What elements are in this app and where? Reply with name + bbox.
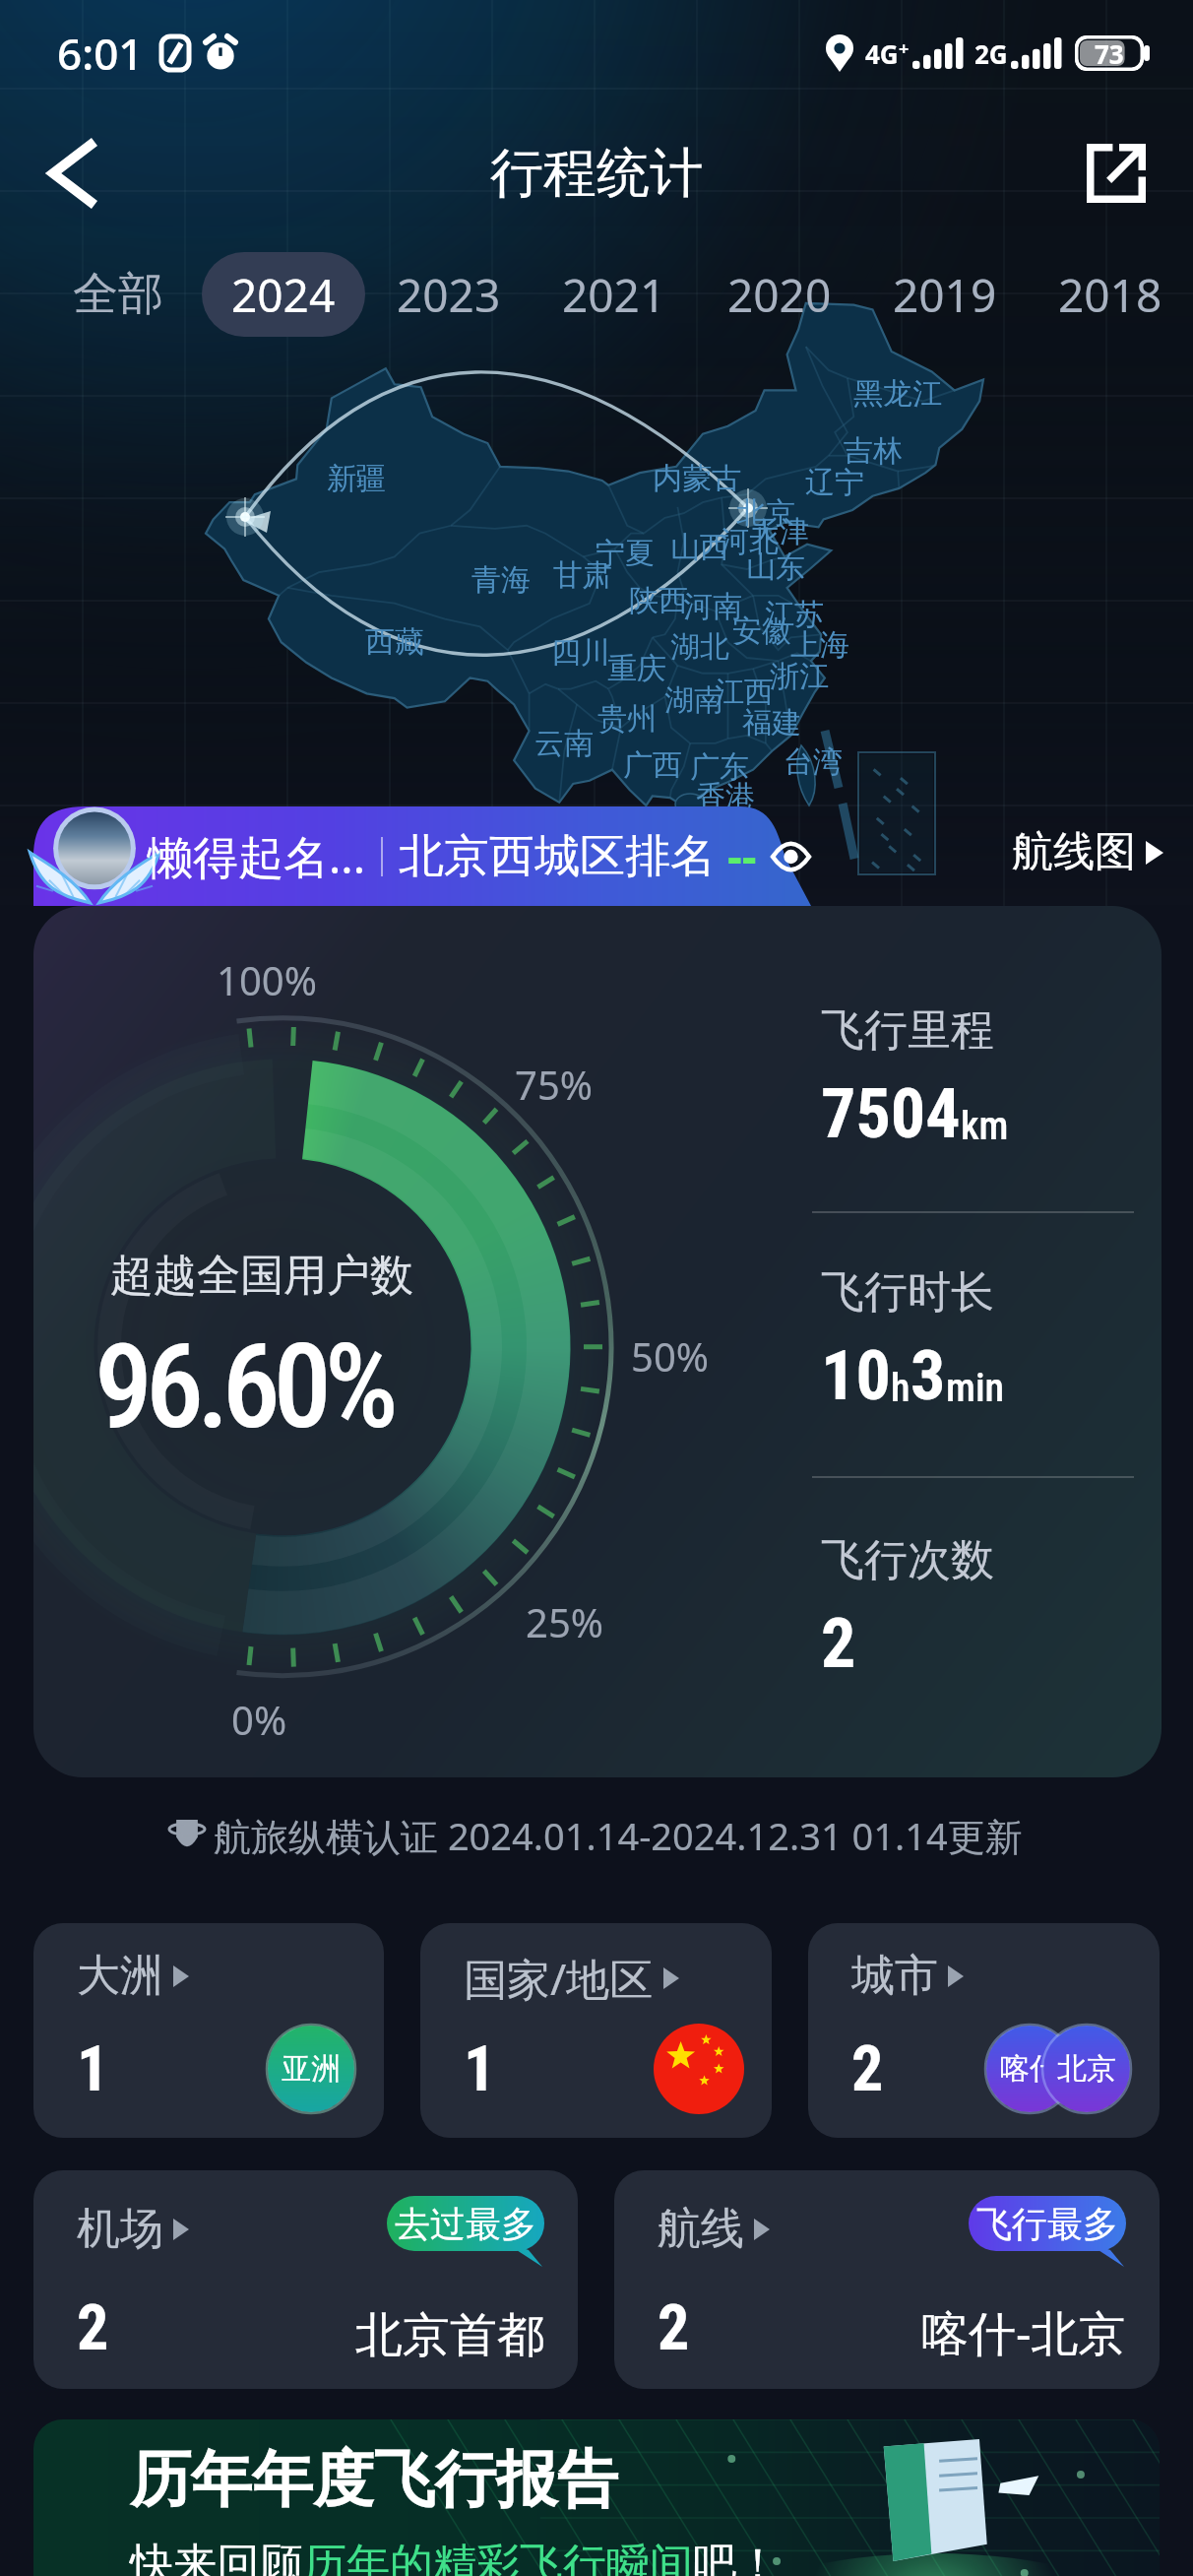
button[interactable]: 全部 xyxy=(36,252,200,337)
staticText: 内蒙古 xyxy=(653,460,741,497)
staticText: 2 xyxy=(821,1603,856,1684)
staticText: 安徽 xyxy=(732,612,791,650)
staticText: 山西 xyxy=(670,529,729,566)
staticText: 机场 xyxy=(77,2202,163,2256)
staticText: 航线 xyxy=(658,2202,744,2256)
button[interactable]: 航线图 xyxy=(1008,820,1167,884)
button[interactable]: 2020 xyxy=(698,252,861,337)
staticText: 山东 xyxy=(746,548,805,586)
staticText: 2023 xyxy=(397,264,501,326)
staticText: 北京 xyxy=(736,494,795,532)
button[interactable]: 2021 xyxy=(533,252,696,337)
staticText: 2021 xyxy=(562,264,666,326)
button[interactable]: 国家/地区 xyxy=(420,1923,772,2138)
staticText: 青海 xyxy=(471,561,531,599)
staticText: -- xyxy=(727,825,757,887)
staticText: 全部 xyxy=(73,266,163,323)
staticText: 云南 xyxy=(534,725,594,762)
staticText: 湖南 xyxy=(664,681,723,719)
button[interactable]: 2023 xyxy=(367,252,531,337)
staticText: 行程统计 xyxy=(490,140,703,207)
staticText: 大洲 xyxy=(77,1949,163,2003)
staticText: 四川 xyxy=(551,634,610,672)
staticText: 吉林 xyxy=(844,432,903,470)
staticText: 吧！ xyxy=(693,2538,780,2576)
staticText: 3 xyxy=(910,1335,946,1416)
staticText: 航线图 xyxy=(1012,826,1136,878)
staticText: 北京西城区排名 xyxy=(399,828,716,885)
staticText: 广东 xyxy=(690,748,749,786)
staticText: 超越全国用户数 xyxy=(110,1249,413,1303)
staticText: 50% xyxy=(631,1329,709,1383)
staticText: 去过最多 xyxy=(395,2202,536,2246)
staticText: 历年的精彩飞行瞬间 xyxy=(303,2538,693,2576)
staticText: 甘肃 xyxy=(553,556,612,594)
button[interactable]: Back xyxy=(22,124,120,223)
staticText: 7504 xyxy=(821,1073,961,1154)
button[interactable]: 大洲 xyxy=(33,1923,384,2138)
staticText: 96.60% xyxy=(94,1320,392,1455)
staticText: 宁夏 xyxy=(596,535,655,572)
staticText: 快来回顾 xyxy=(130,2538,303,2576)
staticText: 73 xyxy=(1095,36,1124,71)
staticText: 2 xyxy=(658,2291,690,2365)
staticText: 河北 xyxy=(720,523,779,560)
staticText: 0% xyxy=(231,1693,287,1746)
staticText: 天津 xyxy=(750,513,809,550)
button[interactable]: 2024 xyxy=(202,252,365,337)
staticText: 2020 xyxy=(727,264,832,326)
staticText: 飞行次数 xyxy=(821,1533,994,1587)
staticText: 北京 xyxy=(1057,2050,1116,2088)
staticText: 25% xyxy=(526,1595,603,1648)
staticText: 喀什 xyxy=(1000,2050,1059,2088)
staticText: 辽宁 xyxy=(805,464,864,501)
staticText: 重庆 xyxy=(607,650,666,687)
staticText: 2G xyxy=(974,36,1008,71)
staticText: 飞行时长 xyxy=(821,1265,994,1320)
staticText: 航旅纵横认证 2024.01.14-2024.12.31 01.14更新 xyxy=(214,1810,1023,1861)
staticText: 西藏 xyxy=(365,623,424,661)
staticText: + xyxy=(899,36,910,61)
staticText: 江西 xyxy=(715,674,774,711)
staticText: 城市 xyxy=(851,1949,938,2003)
staticText: 陕西 xyxy=(629,582,688,619)
button[interactable]: 机场 xyxy=(33,2170,578,2389)
button[interactable]: 2018 xyxy=(1029,252,1192,337)
staticText: 6:01 xyxy=(57,24,144,83)
staticText: 1 xyxy=(464,2032,496,2106)
button[interactable]: 航线 xyxy=(614,2170,1160,2389)
staticText: 黑龙江 xyxy=(853,375,942,413)
staticText: 喀什-北京 xyxy=(921,2300,1126,2365)
staticText: 台湾 xyxy=(784,743,843,781)
staticText: 懒得起名... xyxy=(148,825,365,887)
staticText: km xyxy=(961,1103,1009,1149)
button[interactable]: 懒得起名... xyxy=(33,806,811,906)
staticText: 江苏 xyxy=(765,596,824,633)
button[interactable]: 历年年度飞行报告 xyxy=(33,2419,1160,2576)
staticText: 河南 xyxy=(683,588,742,625)
button[interactable]: 城市 xyxy=(808,1923,1160,2138)
staticText: min xyxy=(946,1365,1005,1411)
staticText: 福建 xyxy=(742,704,801,741)
staticText: 飞行最多 xyxy=(976,2202,1118,2246)
staticText: 75% xyxy=(515,1058,593,1111)
staticText: 1 xyxy=(77,2032,109,2106)
staticText: 2 xyxy=(851,2032,884,2106)
staticText: 湖北 xyxy=(670,628,729,666)
staticText: 10 xyxy=(821,1335,891,1416)
staticText: 上海 xyxy=(790,626,849,664)
staticText: 2019 xyxy=(893,264,997,326)
staticText: 飞行里程 xyxy=(821,1003,994,1058)
staticText: 香港 xyxy=(696,778,755,815)
staticText: 2024 xyxy=(231,264,336,326)
button[interactable]: 2019 xyxy=(863,252,1027,337)
staticText: 历年年度飞行报告 xyxy=(130,2441,618,2518)
staticText: 2 xyxy=(77,2291,109,2365)
staticText: h xyxy=(891,1365,910,1411)
staticText: 新疆 xyxy=(327,460,386,497)
staticText: 2018 xyxy=(1058,264,1162,326)
staticText: 亚洲 xyxy=(282,2050,341,2088)
button[interactable]: Share xyxy=(1067,124,1165,223)
staticText: 浙江 xyxy=(770,658,829,695)
staticText: 4G xyxy=(865,36,899,71)
